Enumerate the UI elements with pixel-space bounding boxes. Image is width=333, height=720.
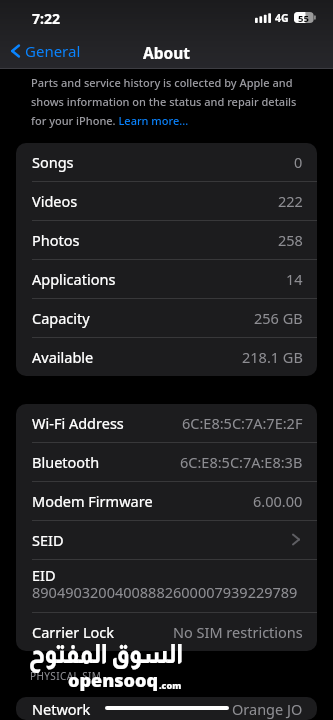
staticText: 0 xyxy=(294,152,303,172)
staticText: General xyxy=(25,41,81,61)
button[interactable]: Videos xyxy=(16,182,317,220)
button[interactable]: EID xyxy=(16,560,317,612)
staticText: 7:22 xyxy=(32,9,60,28)
button[interactable]: Modem Firmware xyxy=(16,482,317,520)
button[interactable]: Bluetooth xyxy=(16,443,317,481)
staticText: Modem Firmware xyxy=(32,491,153,511)
button[interactable]: Available xyxy=(16,338,317,376)
staticText: No SIM restrictions xyxy=(173,622,303,642)
staticText: 258 xyxy=(278,230,303,250)
staticText: 4G xyxy=(275,11,289,25)
staticText: .com xyxy=(159,679,182,691)
button[interactable]: Photos xyxy=(16,221,317,259)
staticText: PHYSICAL SIM xyxy=(30,669,102,683)
staticText: Network xyxy=(32,699,91,719)
button[interactable]: Network xyxy=(16,697,317,720)
staticText: opensooq xyxy=(68,668,159,693)
staticText: Carrier Lock xyxy=(32,622,115,642)
staticText: About xyxy=(143,42,191,63)
staticText: 14 xyxy=(286,269,303,289)
staticText: Parts and service history is collected b… xyxy=(31,75,300,128)
staticText: 55 xyxy=(298,12,309,23)
staticText: 89049032004008882600007939229789 xyxy=(32,582,298,602)
staticText: Applications xyxy=(32,269,116,289)
staticText: Bluetooth xyxy=(32,452,100,472)
staticText: 6.00.00 xyxy=(253,491,303,511)
button[interactable]: Carrier Lock xyxy=(16,613,317,651)
staticText: 6C:E8:5C:7A:E8:3B xyxy=(180,452,303,472)
staticText: 218.1 GB xyxy=(242,347,303,367)
button[interactable]: Applications xyxy=(16,260,317,298)
staticText: 6C:E8:5C:7A:7E:2F xyxy=(182,413,303,433)
staticText: Photos xyxy=(32,230,80,250)
staticText: Videos xyxy=(32,191,78,211)
button[interactable]: Back xyxy=(8,39,85,63)
staticText: EID xyxy=(32,565,56,585)
button[interactable]: SEID xyxy=(16,521,317,559)
staticText: Available xyxy=(32,347,94,367)
staticText: السوق المفتوح xyxy=(29,639,183,668)
staticText: SEID xyxy=(32,530,64,550)
staticText: Capacity xyxy=(32,308,90,328)
staticText: 222 xyxy=(278,191,303,211)
staticText: 256 GB xyxy=(254,308,303,328)
staticText: Orange JO xyxy=(232,699,303,719)
staticText: Songs xyxy=(32,152,74,172)
button[interactable]: Songs xyxy=(16,143,317,181)
button[interactable]: Capacity xyxy=(16,299,317,337)
button[interactable]: Wi-Fi Address xyxy=(16,404,317,442)
other: Back xyxy=(11,43,20,59)
staticText: Wi-Fi Address xyxy=(32,413,124,433)
